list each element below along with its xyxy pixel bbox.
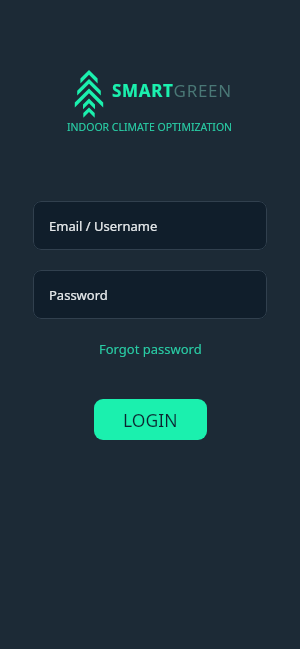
- button[interactable]: LOGIN: [94, 399, 207, 440]
- button[interactable]: Password: [33, 270, 267, 319]
- staticText: INDOOR CLIMATE OPTIMIZATION: [67, 120, 233, 134]
- staticText: LOGIN: [123, 408, 178, 432]
- button[interactable]: Forgot password: [99, 340, 202, 358]
- button[interactable]: Email / Username: [33, 201, 267, 250]
- staticText: Email / Username: [49, 217, 158, 235]
- staticText: Forgot password: [99, 340, 202, 358]
- staticText: SMARTGREEN: [112, 79, 232, 102]
- staticText: Password: [49, 286, 108, 304]
